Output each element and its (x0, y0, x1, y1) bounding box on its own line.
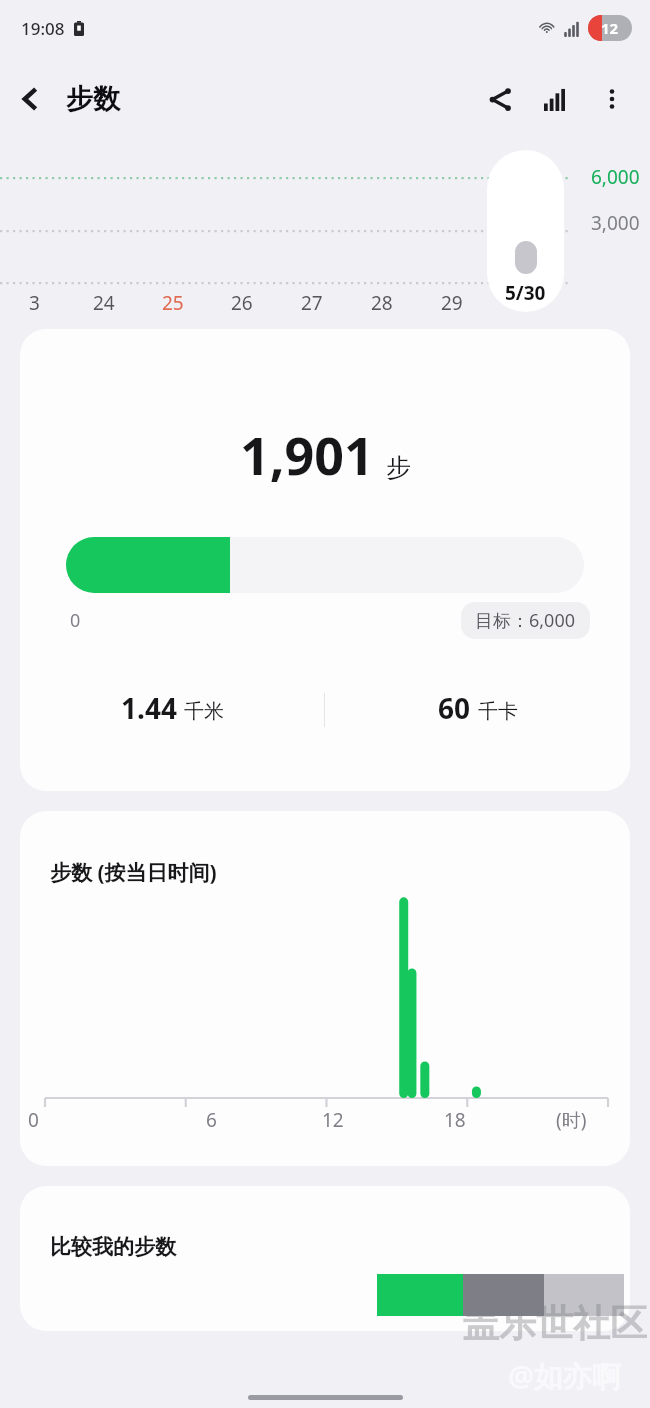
staticText: 比较我的步数 (50, 1234, 176, 1260)
staticText: 1.44 (121, 689, 177, 727)
staticText: 步数 (按当日时间) (50, 858, 217, 887)
staticText: (时) (556, 1107, 587, 1133)
staticText: 19:08 (21, 17, 65, 40)
staticText: 29 (441, 290, 463, 316)
button[interactable]: More options (584, 71, 640, 127)
staticText: 24 (93, 290, 115, 316)
button[interactable]: Back (0, 69, 60, 129)
button[interactable]: 1,901 (20, 329, 630, 791)
staticText: 3,000 (591, 210, 640, 236)
staticText: 26 (231, 290, 253, 316)
staticText: 步 (386, 452, 411, 483)
staticText: 18 (444, 1107, 466, 1133)
staticText: 5/30 (505, 280, 546, 306)
button[interactable]: Statistics (528, 71, 584, 127)
staticText: 12 (322, 1107, 344, 1133)
staticText: 0 (28, 1107, 39, 1133)
staticText: 6,000 (591, 164, 640, 190)
button[interactable]: 5/30 (487, 150, 564, 312)
staticText: 千米 (184, 699, 224, 724)
staticText: 1,901 (240, 419, 374, 490)
staticText: 27 (301, 290, 323, 316)
staticText: 盖乐世社区 (462, 1300, 647, 1347)
button[interactable]: Share (472, 71, 528, 127)
staticText: 12 (601, 18, 619, 38)
button[interactable]: 步数 (按当日时间) (20, 811, 630, 1166)
button[interactable]: 比较我的步数 (20, 1186, 630, 1331)
staticText: 目标：6,000 (475, 608, 576, 633)
staticText: 3 (29, 290, 40, 316)
staticText: 28 (371, 290, 393, 316)
staticText: @如亦啊 (508, 1356, 622, 1396)
staticText: 60 (438, 689, 471, 727)
staticText: 25 (162, 290, 184, 316)
staticText: 0 (70, 608, 81, 633)
staticText: 千卡 (478, 699, 518, 724)
staticText: 步数 (66, 82, 120, 116)
staticText: 6 (206, 1107, 217, 1133)
